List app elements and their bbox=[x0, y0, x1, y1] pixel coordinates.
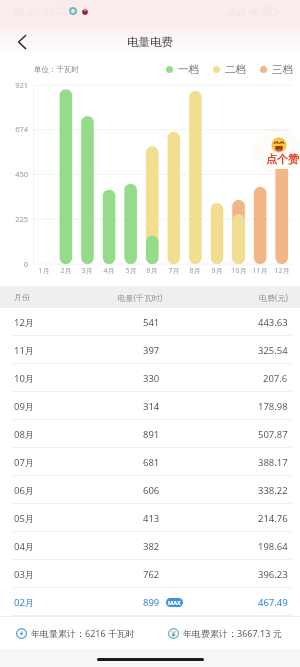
staticText: 388.17 bbox=[258, 456, 288, 469]
staticText: 541 bbox=[143, 316, 160, 329]
staticText: 225 bbox=[5, 214, 28, 224]
staticText: 450 bbox=[5, 169, 28, 179]
staticText: 年电费累计：3667.13 元 bbox=[183, 627, 282, 639]
staticText: 314 bbox=[143, 400, 160, 413]
button[interactable]: 点个赞 bbox=[253, 133, 300, 169]
staticText: 点个赞 bbox=[266, 152, 299, 166]
button[interactable]: 10月 bbox=[0, 364, 300, 392]
staticText: 月份 bbox=[14, 292, 30, 302]
staticText: 一档 bbox=[178, 63, 199, 76]
staticText: 3月 bbox=[75, 266, 99, 276]
staticText: 电量(千瓦时) bbox=[108, 292, 172, 303]
staticText: 4月 bbox=[97, 266, 121, 276]
staticText: 11月 bbox=[248, 266, 272, 276]
staticText: 电费(元) bbox=[259, 292, 288, 303]
staticText: 12月 bbox=[14, 316, 35, 329]
button[interactable]: 返回 bbox=[8, 28, 35, 55]
staticText: 7月 bbox=[162, 266, 186, 276]
staticText: 443.63 bbox=[258, 316, 288, 329]
staticText: 02月 bbox=[14, 596, 35, 609]
staticText: 762 bbox=[143, 568, 160, 581]
staticText: 9月 bbox=[205, 266, 229, 276]
staticText: 178.98 bbox=[258, 400, 288, 413]
staticText: 681 bbox=[143, 456, 160, 469]
staticText: 12月 bbox=[270, 266, 294, 276]
staticText: 年电量累计：6216 千瓦时 bbox=[31, 627, 135, 639]
staticText: 198.64 bbox=[258, 540, 288, 553]
staticText: 06月 bbox=[14, 484, 35, 497]
staticText: 507.87 bbox=[258, 428, 288, 441]
staticText: 三档 bbox=[272, 63, 293, 76]
staticText: 0 bbox=[5, 259, 28, 269]
staticText: 10月 bbox=[227, 266, 251, 276]
button[interactable]: 06月 bbox=[0, 476, 300, 504]
button[interactable]: 09月 bbox=[0, 392, 300, 420]
staticText: 467.49 bbox=[258, 596, 288, 609]
staticText: 396.23 bbox=[258, 568, 288, 581]
button[interactable]: 07月 bbox=[0, 448, 300, 476]
staticText: 07月 bbox=[14, 456, 35, 469]
staticText: 899 bbox=[143, 596, 160, 609]
button[interactable]: 04月 bbox=[0, 532, 300, 560]
staticText: MAX bbox=[168, 599, 181, 606]
staticText: 11月 bbox=[14, 344, 35, 357]
button[interactable]: 年电费累计：3667.13 元 bbox=[150, 617, 300, 649]
staticText: 330 bbox=[143, 372, 160, 385]
staticText: 电量电费 bbox=[0, 35, 300, 49]
staticText: 338.22 bbox=[258, 484, 288, 497]
button[interactable]: 11月 bbox=[0, 336, 300, 364]
button[interactable]: 05月 bbox=[0, 504, 300, 532]
button[interactable]: 03月 bbox=[0, 560, 300, 588]
staticText: 207.6 bbox=[263, 372, 288, 385]
button[interactable]: 08月 bbox=[0, 420, 300, 448]
staticText: 5月 bbox=[119, 266, 143, 276]
staticText: 8月 bbox=[183, 266, 207, 276]
staticText: 1月 bbox=[32, 266, 56, 276]
staticText: 921 bbox=[5, 80, 28, 90]
button[interactable]: 年电量累计：6216 千瓦时 bbox=[0, 617, 150, 649]
button[interactable]: 12月 bbox=[0, 308, 300, 336]
staticText: 397 bbox=[143, 344, 160, 357]
staticText: 413 bbox=[143, 512, 160, 525]
staticText: 单位：千瓦时 bbox=[34, 65, 79, 74]
staticText: 二档 bbox=[225, 63, 246, 76]
staticText: 674 bbox=[5, 124, 28, 134]
staticText: 04月 bbox=[14, 540, 35, 553]
staticText: 325.54 bbox=[258, 344, 288, 357]
staticText: 606 bbox=[143, 484, 160, 497]
staticText: 6月 bbox=[140, 266, 164, 276]
button[interactable]: 02月 bbox=[0, 588, 300, 616]
staticText: 03月 bbox=[14, 568, 35, 581]
staticText: 214.76 bbox=[258, 512, 288, 525]
staticText: 382 bbox=[143, 540, 160, 553]
staticText: 10月 bbox=[14, 372, 35, 385]
staticText: 891 bbox=[143, 428, 160, 441]
staticText: 08月 bbox=[14, 428, 35, 441]
staticText: 05月 bbox=[14, 512, 35, 525]
staticText: 09月 bbox=[14, 400, 35, 413]
staticText: 2月 bbox=[54, 266, 78, 276]
